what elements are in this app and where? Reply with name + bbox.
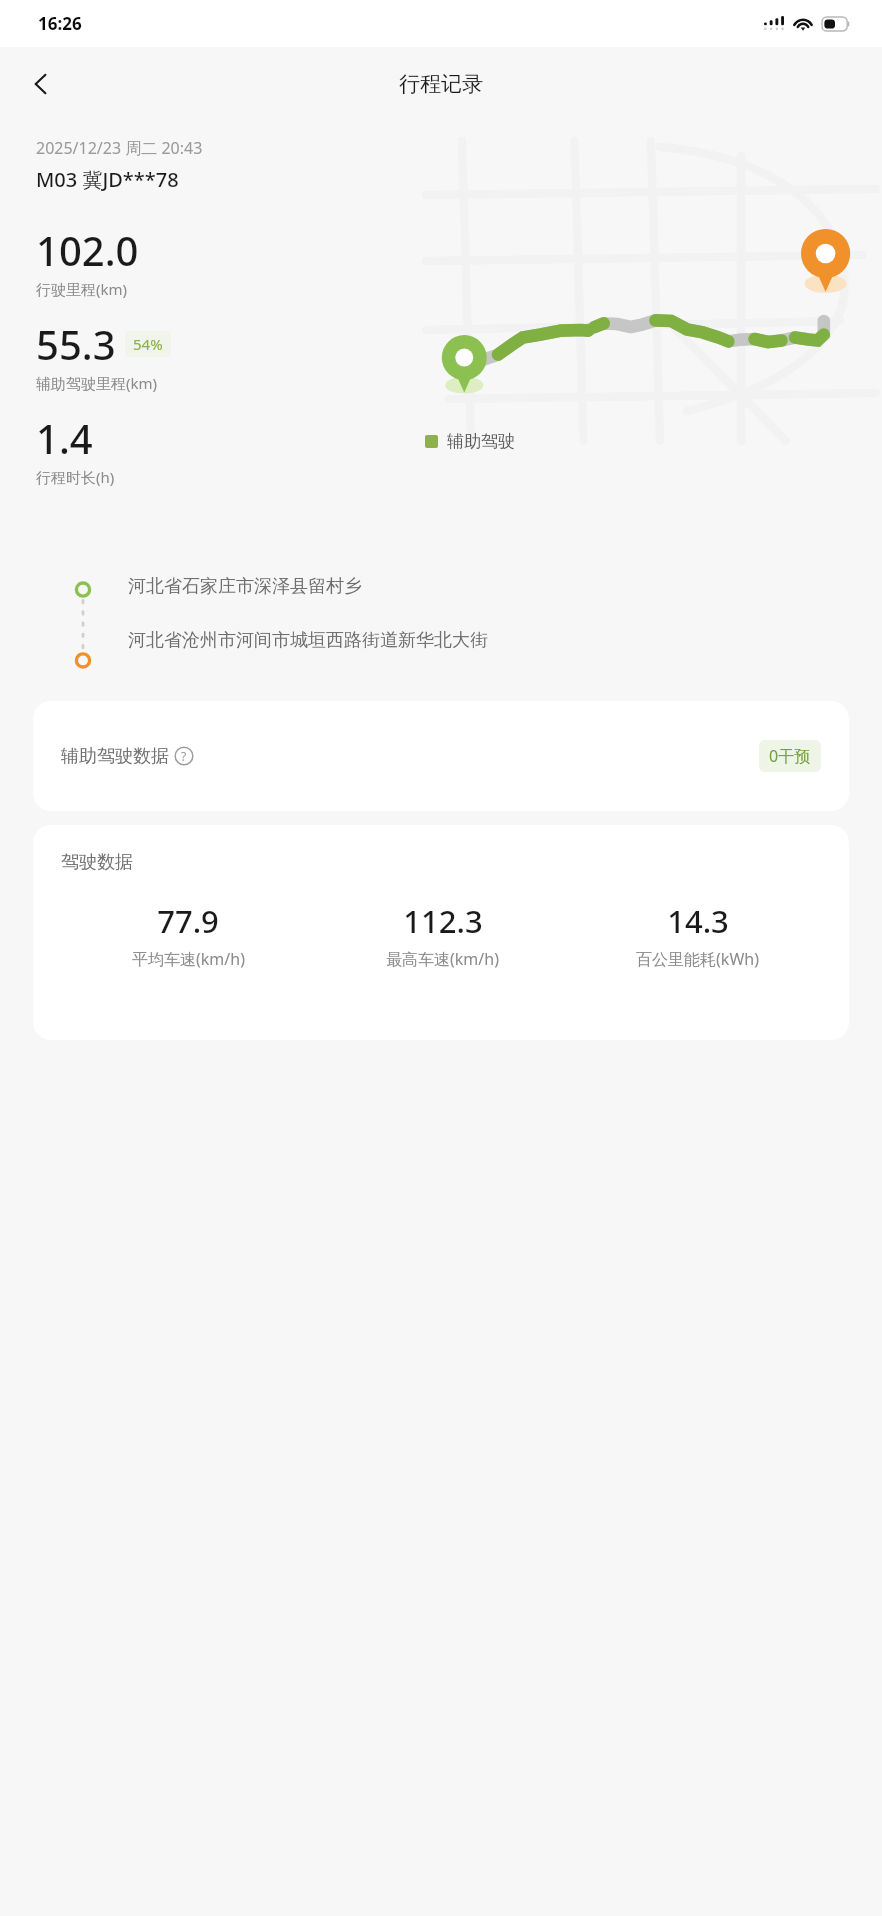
staticText: 河北省石家庄市深泽县留村乡 <box>128 575 362 598</box>
staticText: 辅助驾驶 <box>447 431 515 452</box>
staticText: 驾驶数据 <box>61 851 133 874</box>
staticText: 14.3 <box>667 900 729 942</box>
staticText: M03 冀JD***78 <box>36 166 179 193</box>
staticText: 行程时长(h) <box>36 467 115 487</box>
staticText: 54% <box>133 334 163 354</box>
staticText: 河北省沧州市河间市城垣西路街道新华北大街 <box>128 629 488 652</box>
button[interactable]: 辅助驾驶数据 <box>33 701 849 811</box>
staticText: 辅助驾驶数据 <box>61 745 169 768</box>
staticText: 112.3 <box>403 900 483 942</box>
staticText: 辅助驾驶里程(km) <box>36 373 158 393</box>
staticText: 最高车速(km/h) <box>386 948 499 970</box>
staticText: 行程记录 <box>399 71 483 97</box>
staticText: 百公里能耗(kWh) <box>636 948 759 970</box>
button[interactable]: 驾驶数据 <box>33 825 849 1040</box>
staticText: 1.4 <box>36 411 93 465</box>
staticText: 2025/12/23 周二 20:43 <box>36 137 203 159</box>
staticText: 行驶里程(km) <box>36 279 128 299</box>
staticText: ? <box>181 748 187 764</box>
button[interactable]: Help <box>174 746 194 766</box>
staticText: 55.3 <box>36 317 116 371</box>
staticText: 102.0 <box>36 223 139 277</box>
staticText: 0干预 <box>769 745 811 767</box>
button[interactable]: Back <box>14 57 68 111</box>
staticText: 平均车速(km/h) <box>132 948 245 970</box>
staticText: 77.9 <box>157 900 219 942</box>
staticText: 16:26 <box>38 12 82 35</box>
